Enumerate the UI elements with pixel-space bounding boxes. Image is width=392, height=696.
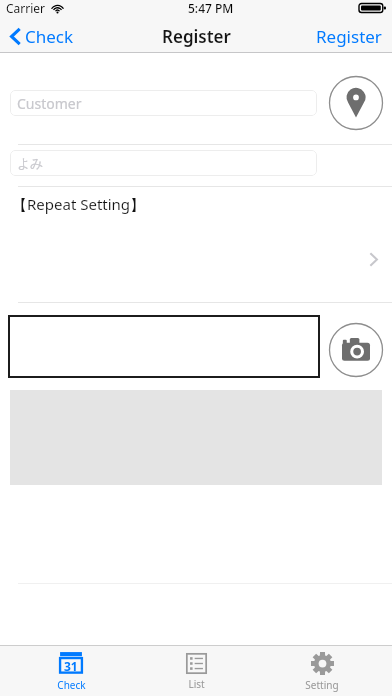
button[interactable]: Note field — [8, 315, 320, 378]
staticText: List — [188, 677, 205, 691]
staticText: Customer — [17, 94, 82, 113]
staticText: よみ — [17, 155, 44, 171]
staticText: 【Repeat Setting】 — [12, 194, 146, 214]
staticText: 5:47 PM — [188, 0, 234, 16]
staticText: Check — [25, 25, 74, 48]
button[interactable]: Register — [306, 20, 392, 53]
button[interactable]: よみ — [10, 150, 317, 176]
button[interactable]: Pick location — [328, 75, 384, 131]
button[interactable]: Customer — [10, 90, 317, 116]
staticText: Register — [316, 25, 382, 48]
staticText: Register — [162, 25, 231, 48]
button[interactable]: 31 — [16, 646, 126, 696]
staticText: 31 — [64, 658, 78, 674]
staticText: Check — [57, 678, 86, 692]
button[interactable]: Setting — [267, 646, 377, 696]
button[interactable]: List — [141, 646, 251, 696]
button[interactable]: Take photo — [328, 322, 384, 378]
button[interactable]: Check — [0, 21, 86, 52]
staticText: Carrier — [6, 0, 46, 16]
staticText: Setting — [305, 678, 339, 692]
